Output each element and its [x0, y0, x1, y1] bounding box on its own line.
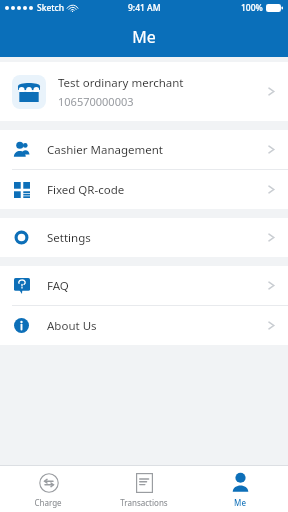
button[interactable]: Transactions: [96, 466, 192, 512]
button[interactable]: Charge: [0, 466, 96, 512]
staticText: FAQ: [47, 278, 267, 294]
button[interactable]: About Us: [0, 306, 288, 345]
staticText: Fixed QR-code: [47, 182, 267, 198]
staticText: Transactions: [120, 497, 168, 508]
button[interactable]: FAQ: [0, 266, 288, 305]
staticText: Sketch: [37, 2, 65, 14]
button[interactable]: Cashier Management: [0, 130, 288, 169]
staticText: Cashier Management: [47, 142, 267, 158]
staticText: Test ordinary merchant: [58, 75, 184, 91]
staticText: 100%: [241, 2, 263, 14]
button[interactable]: Settings: [0, 218, 288, 257]
staticText: About Us: [47, 318, 267, 334]
staticText: 9:41 AM: [128, 2, 161, 14]
staticText: Me: [132, 26, 156, 48]
staticText: 106570000003: [58, 94, 134, 109]
staticText: Settings: [47, 230, 267, 246]
button[interactable]: Me: [192, 466, 288, 512]
button[interactable]: Test ordinary merchant: [0, 62, 288, 121]
button[interactable]: Fixed QR-code: [0, 170, 288, 209]
staticText: Charge: [34, 497, 62, 508]
staticText: Me: [234, 497, 246, 508]
